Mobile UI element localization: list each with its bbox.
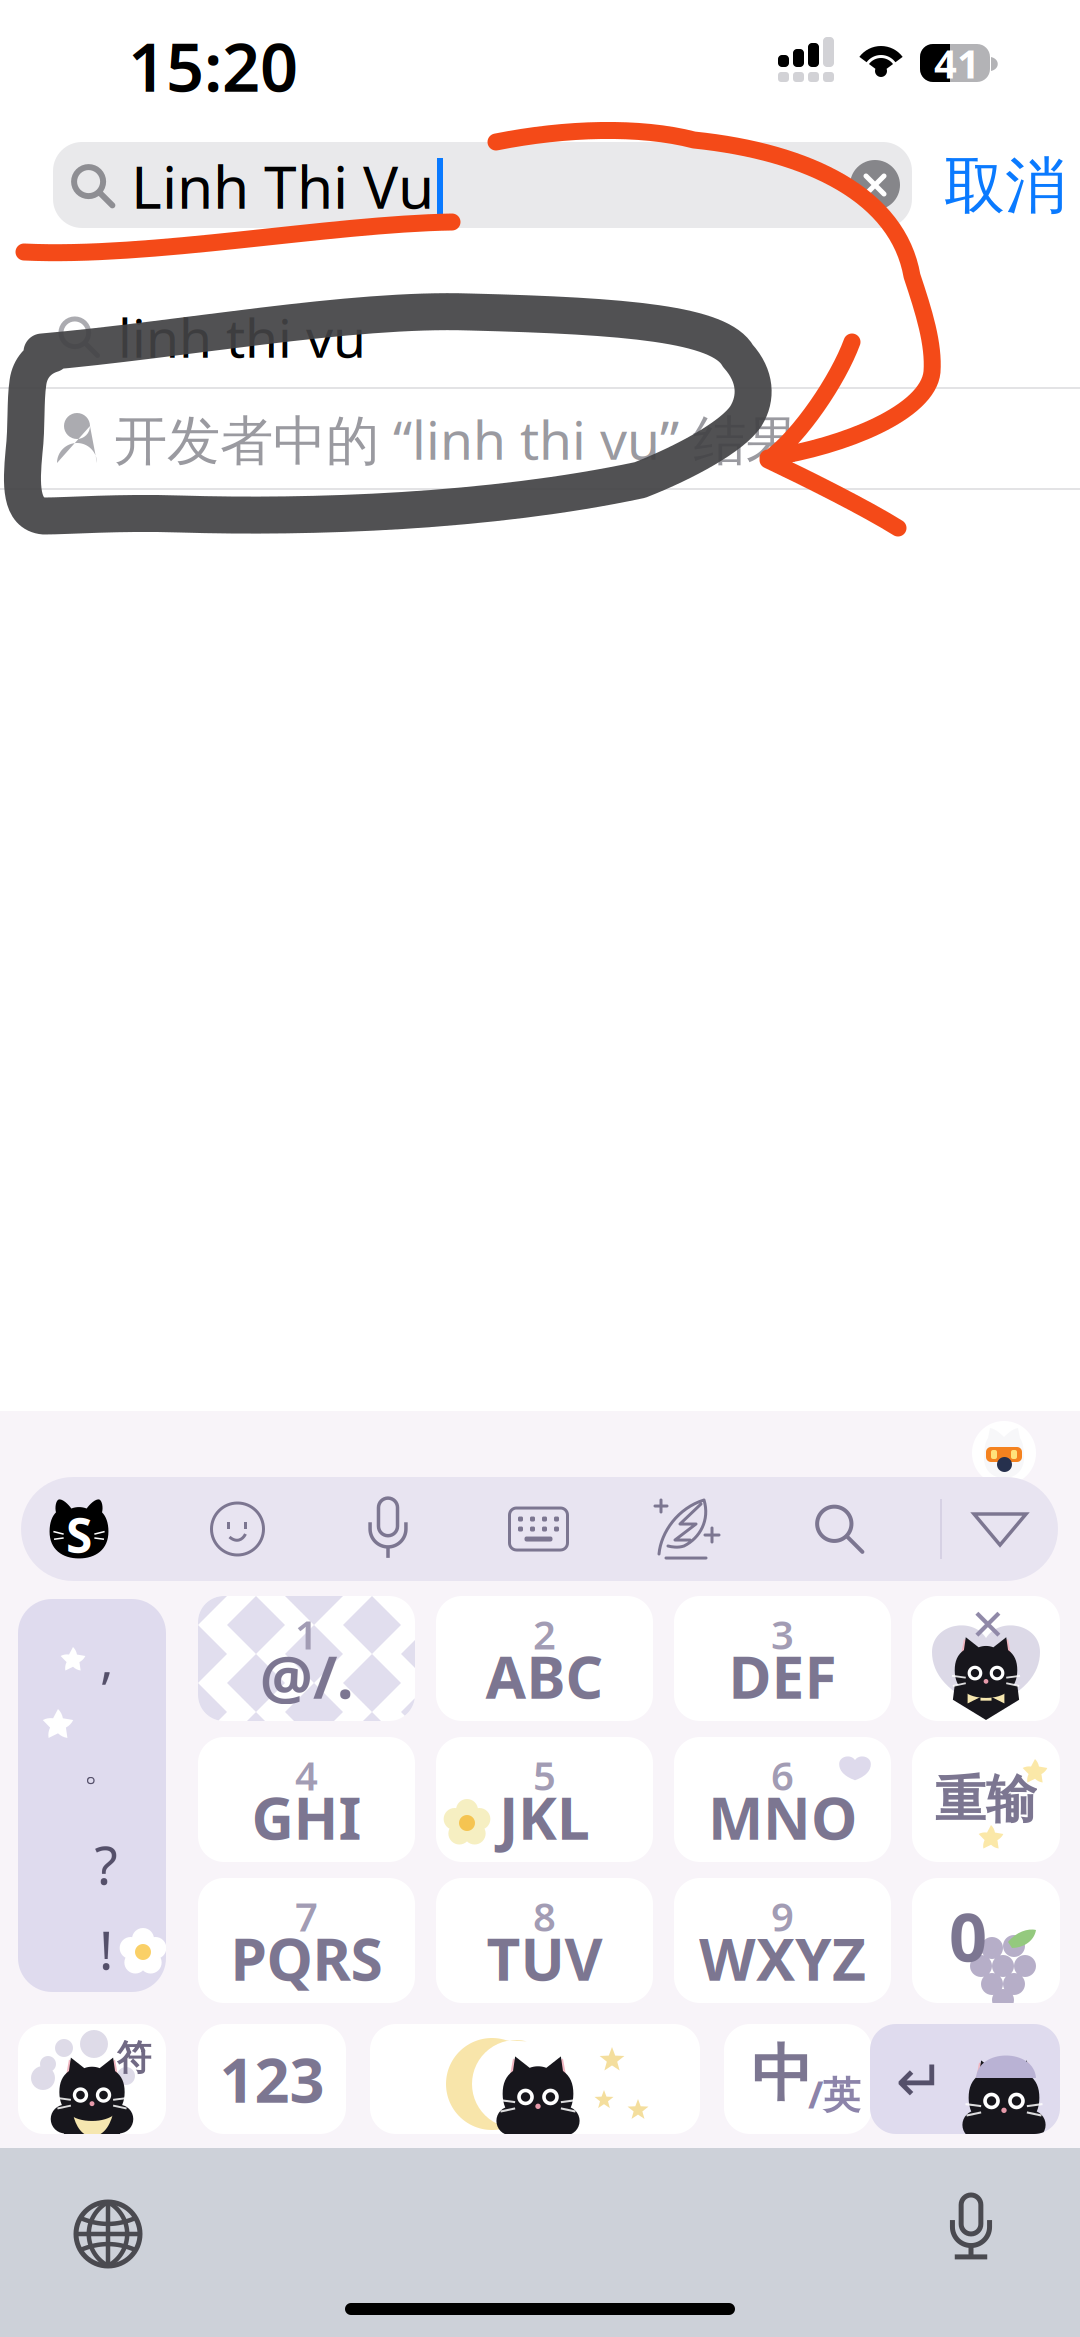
button[interactable]: Keyboard layout xyxy=(488,1477,588,1581)
staticText: 6 xyxy=(771,1748,794,1801)
staticText: /英 xyxy=(808,2069,860,2119)
button[interactable]: Redo xyxy=(0,0,1080,2337)
button[interactable]: Search xyxy=(789,1477,889,1581)
button[interactable]: Numbers xyxy=(198,2024,346,2134)
staticText: 取消 xyxy=(944,148,1066,224)
button[interactable]: Switch keyboard xyxy=(0,0,1080,2337)
staticText: 开发者中的 “linh thi vu” 结果 xyxy=(114,404,799,474)
button[interactable]: Symbols xyxy=(0,0,1080,2337)
staticText: 41 xyxy=(934,36,980,89)
staticText: DEF xyxy=(728,1637,836,1715)
staticText: 2 xyxy=(533,1607,556,1660)
staticText: Linh Thi Vu xyxy=(131,147,434,225)
button[interactable]: 6 xyxy=(674,1737,891,1862)
button[interactable]: 4 xyxy=(198,1737,415,1862)
staticText: GHI xyxy=(251,1778,361,1856)
staticText: S xyxy=(58,1488,99,1588)
staticText: WXYZ xyxy=(699,1919,866,1997)
button[interactable]: 3 xyxy=(674,1596,891,1721)
button[interactable]: Sogou assistant xyxy=(0,0,1080,2337)
staticText: 0 xyxy=(949,1892,987,1980)
staticText: , xyxy=(100,1624,114,1692)
button[interactable]: Zero xyxy=(0,0,1080,2337)
button[interactable]: 8 xyxy=(436,1878,653,2003)
button[interactable]: 取消 xyxy=(0,0,1080,2337)
staticText: 123 xyxy=(219,2038,324,2120)
staticText: ABC xyxy=(485,1637,603,1715)
button[interactable]: 9 xyxy=(674,1878,891,2003)
button[interactable]: 5 xyxy=(436,1737,653,1862)
staticText: JKL xyxy=(499,1778,590,1856)
staticText: 7 xyxy=(295,1889,318,1942)
staticText: TUV xyxy=(486,1919,602,1997)
staticText: linh thi vu xyxy=(118,302,366,372)
button[interactable]: 7 xyxy=(198,1878,415,2003)
staticText: 1 xyxy=(295,1607,318,1660)
button[interactable]: Clear text xyxy=(0,0,1080,2337)
button[interactable]: Dictation xyxy=(0,0,1080,2337)
staticText: 中 xyxy=(751,2036,812,2112)
staticText: 重输 xyxy=(935,1769,1037,1831)
staticText: 8 xyxy=(533,1889,556,1942)
staticText: ! xyxy=(99,1914,113,1984)
staticText: ? xyxy=(94,1829,117,1899)
staticText: 3 xyxy=(771,1607,794,1660)
button[interactable]: 1 at slash dot xyxy=(0,0,1080,2337)
staticText: 15:20 xyxy=(128,22,298,110)
button[interactable]: Voice input xyxy=(338,1477,438,1581)
button[interactable]: Sogou menu xyxy=(21,1477,137,1581)
staticText: 。 xyxy=(83,1748,118,1790)
button[interactable]: Punctuation xyxy=(0,0,1080,2337)
button[interactable]: Hide keyboard xyxy=(942,1477,1058,1581)
button[interactable]: Return xyxy=(0,0,1080,2337)
staticText: MNO xyxy=(708,1778,857,1856)
button[interactable]: linh thi vu xyxy=(0,0,1080,2337)
button[interactable]: 2 xyxy=(436,1596,653,1721)
button[interactable]: Space xyxy=(0,0,1080,2337)
staticText: 符 xyxy=(116,2037,151,2079)
button[interactable]: Emoji xyxy=(187,1477,287,1581)
button[interactable]: Chinese English toggle xyxy=(0,0,1080,2337)
staticText: ↵ xyxy=(895,2048,944,2114)
staticText: 5 xyxy=(533,1748,556,1801)
button[interactable]: Handwriting xyxy=(639,1477,739,1581)
staticText: @/. xyxy=(260,1637,353,1715)
staticText: 9 xyxy=(771,1889,794,1942)
staticText: 4 xyxy=(295,1748,318,1801)
button[interactable]: Cat sticker xyxy=(0,0,1080,2337)
button[interactable]: 开发者中的 “linh thi vu” 结果 xyxy=(0,0,1080,2337)
staticText: PQRS xyxy=(230,1919,382,1997)
staticText: ✕ xyxy=(970,1601,1006,1649)
